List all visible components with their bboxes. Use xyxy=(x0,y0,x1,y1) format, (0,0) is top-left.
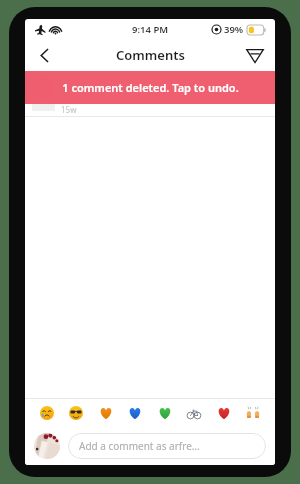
staticText: 15w xyxy=(61,104,77,115)
button[interactable]: Your profile photo xyxy=(34,433,60,459)
button[interactable]: Share xyxy=(235,39,275,71)
button[interactable]: Add a comment as arfre… xyxy=(68,433,266,459)
staticText: Add a comment as arfre… xyxy=(79,439,200,453)
button[interactable]: Smiling face with sunglasses xyxy=(64,401,88,425)
button[interactable]: Green heart xyxy=(153,401,177,425)
staticText: Comments xyxy=(116,46,185,64)
button[interactable]: Back xyxy=(25,39,63,71)
button[interactable]: 1 comment deleted. Tap to undo. xyxy=(25,71,275,104)
button[interactable]: Bicycle xyxy=(182,401,206,425)
button[interactable]: Red heart xyxy=(212,401,236,425)
button[interactable]: Raising hands xyxy=(241,401,265,425)
button[interactable]: Crying face xyxy=(35,401,59,425)
button[interactable]: Blue heart xyxy=(123,401,147,425)
button[interactable]: Orange heart xyxy=(94,401,118,425)
staticText: 39% xyxy=(224,23,244,36)
staticText: 9:14 PM xyxy=(132,23,169,36)
staticText: 1 comment deleted. Tap to undo. xyxy=(62,80,239,95)
